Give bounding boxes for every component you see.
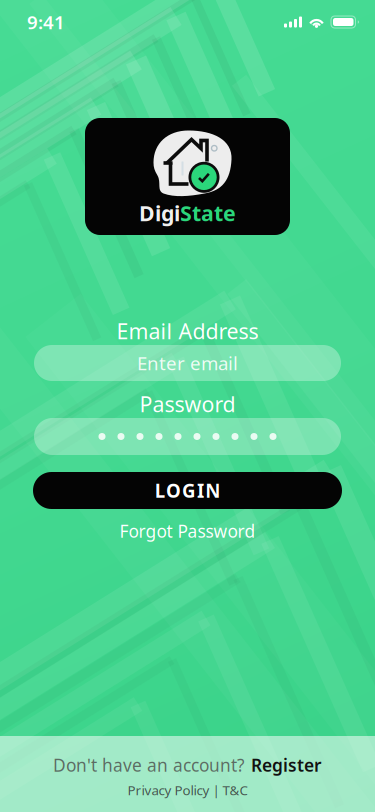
staticText: Forgot Password <box>119 519 255 542</box>
staticText: Digi <box>139 199 180 227</box>
button[interactable]: LOGIN <box>33 472 342 509</box>
staticText: Register <box>251 753 322 776</box>
staticText: Password <box>139 390 235 418</box>
staticText: 9:41 <box>27 10 65 34</box>
staticText: Don't have an account? <box>53 753 245 776</box>
button[interactable]: Register <box>251 753 322 776</box>
button[interactable]: Privacy Policy | T&C <box>127 781 247 799</box>
staticText: Enter email <box>137 351 238 375</box>
button[interactable]: Forgot Password <box>119 520 255 542</box>
staticText: LOGIN <box>155 478 220 503</box>
staticText: Privacy Policy | T&C <box>127 781 247 799</box>
staticText: State <box>180 199 236 227</box>
staticText: Email Address <box>116 317 258 345</box>
